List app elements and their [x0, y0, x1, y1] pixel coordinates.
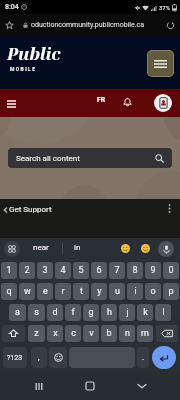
- button[interactable]: z: [28, 325, 45, 342]
- button[interactable]: Emoji: [49, 347, 67, 368]
- button[interactable]: 2: [19, 262, 35, 279]
- staticText: 8: [132, 265, 138, 276]
- staticText: oductioncommunity.publicmobile.ca: [31, 21, 145, 29]
- button[interactable]: d: [47, 304, 63, 321]
- staticText: w: [24, 286, 31, 297]
- button[interactable]: 7: [109, 262, 125, 279]
- staticText: x: [53, 328, 58, 339]
- staticText: ,: [38, 353, 40, 362]
- button[interactable]: Home: [77, 373, 103, 399]
- button[interactable]: h: [101, 304, 117, 321]
- button[interactable]: More options: [162, 201, 176, 215]
- button[interactable]: Search all content: [8, 148, 172, 168]
- button[interactable]: n: [119, 325, 135, 342]
- staticText: Get Support: [9, 205, 52, 214]
- button[interactable]: Navigation menu: [2, 94, 21, 113]
- staticText: i: [134, 286, 137, 297]
- button[interactable]: Hide keyboard: [129, 373, 155, 399]
- staticText: 2: [24, 265, 30, 276]
- staticText: f: [71, 307, 75, 318]
- staticText: n: [125, 328, 130, 339]
- button[interactable]: Keyboard toolbar: [4, 241, 20, 257]
- button[interactable]: Bookmark: [3, 19, 16, 32]
- button[interactable]: o: [145, 283, 161, 300]
- button[interactable]: q: [1, 283, 17, 300]
- button[interactable]: Recent apps: [26, 373, 52, 399]
- button[interactable]: Backspace: [156, 325, 178, 342]
- button[interactable]: 4: [55, 262, 71, 279]
- button[interactable]: Voice input: [158, 241, 174, 257]
- button[interactable]: f: [65, 304, 81, 321]
- staticText: h: [107, 307, 112, 318]
- button[interactable]: Shift: [2, 325, 25, 342]
- button[interactable]: l: [155, 304, 171, 321]
- staticText: 4: [60, 265, 66, 276]
- button[interactable]: Notifications: [119, 93, 136, 110]
- staticText: 5: [78, 265, 84, 276]
- button[interactable]: v: [83, 325, 99, 342]
- button[interactable]: i: [127, 283, 143, 300]
- button[interactable]: x: [47, 325, 63, 342]
- staticText: z: [34, 328, 39, 339]
- button[interactable]: 9: [145, 262, 161, 279]
- button[interactable]: 3: [37, 262, 53, 279]
- staticText: m: [141, 328, 149, 339]
- button[interactable]: Get Support: [3, 205, 52, 214]
- staticText: u: [115, 286, 120, 297]
- staticText: ?123: [7, 354, 23, 362]
- staticText: 6: [96, 265, 102, 276]
- staticText: k: [143, 307, 148, 318]
- button[interactable]: 1: [1, 262, 17, 279]
- staticText: g: [88, 307, 94, 318]
- button[interactable]: r: [55, 283, 71, 300]
- button[interactable]: a: [9, 304, 26, 321]
- staticText: b: [106, 328, 112, 339]
- button[interactable]: Emoji suggestion: [140, 243, 151, 254]
- staticText: 0: [168, 265, 174, 276]
- button[interactable]: near: [33, 243, 49, 252]
- button[interactable]: Open menu: [147, 50, 174, 77]
- button[interactable]: Enter: [152, 346, 176, 369]
- button[interactable]: b: [101, 325, 117, 342]
- staticText: v: [89, 328, 94, 339]
- button[interactable]: Reload: [164, 19, 177, 32]
- staticText: o: [150, 286, 156, 297]
- button[interactable]: FR: [97, 96, 106, 104]
- button[interactable]: .: [137, 347, 149, 368]
- button[interactable]: t: [73, 283, 89, 300]
- button[interactable]: ,: [31, 347, 47, 368]
- button[interactable]: w: [19, 283, 35, 300]
- staticText: l: [162, 307, 165, 318]
- button[interactable]: y: [91, 283, 107, 300]
- button[interactable]: in: [74, 243, 81, 252]
- button[interactable]: p: [163, 283, 179, 300]
- button[interactable]: g: [83, 304, 99, 321]
- button[interactable]: 0: [163, 262, 179, 279]
- staticText: .: [142, 353, 145, 362]
- staticText: near: [33, 243, 49, 252]
- staticText: 7: [114, 265, 120, 276]
- button[interactable]: e: [37, 283, 53, 300]
- button[interactable]: k: [137, 304, 153, 321]
- button[interactable]: My account: [154, 94, 172, 112]
- staticText: e: [43, 286, 48, 297]
- button[interactable]: s: [28, 304, 45, 321]
- button[interactable]: u: [109, 283, 125, 300]
- button[interactable]: 6: [91, 262, 107, 279]
- button[interactable]: Emoji suggestion: [120, 243, 131, 254]
- staticText: d: [52, 307, 58, 318]
- staticText: FR: [97, 96, 106, 104]
- staticText: Search all content: [16, 154, 80, 163]
- button[interactable]: ?123: [3, 347, 27, 368]
- button[interactable]: c: [65, 325, 81, 342]
- button[interactable]: 8: [127, 262, 143, 279]
- button[interactable]: 5: [73, 262, 89, 279]
- staticText: t: [80, 286, 83, 297]
- staticText: in: [74, 243, 81, 252]
- staticText: 8:04: [5, 3, 19, 11]
- staticText: p: [168, 286, 174, 297]
- button[interactable]: m: [137, 325, 153, 342]
- button[interactable]: j: [119, 304, 135, 321]
- staticText: r: [61, 286, 65, 297]
